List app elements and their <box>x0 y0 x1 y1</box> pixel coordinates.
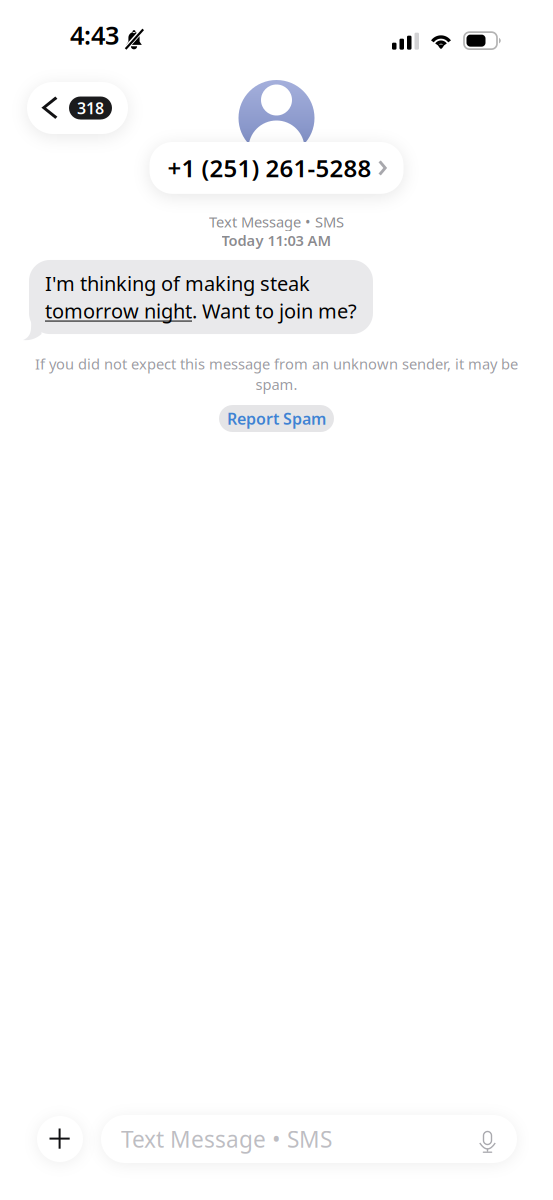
staticText: tomorrow night. Want to join me? <box>45 297 357 324</box>
staticText: +1 (251) 261-5288 <box>167 152 371 184</box>
button[interactable]: Text Message • SMS <box>101 1115 517 1163</box>
button[interactable]: 318 <box>27 82 128 134</box>
button[interactable]: +1 (251) 261-5288 <box>149 142 403 194</box>
staticText: spam. <box>255 375 297 394</box>
staticText: If you did not expect this message from … <box>35 354 518 374</box>
staticText: Text Message • SMS <box>121 1124 332 1154</box>
staticText: 4:43 <box>70 18 119 52</box>
staticText: Text Message • SMS <box>209 212 344 231</box>
button[interactable]: Report Spam <box>219 405 334 432</box>
staticText: I'm thinking of making steak <box>45 270 310 297</box>
staticText: Today 11:03 AM <box>221 230 331 250</box>
staticText: Report Spam <box>227 408 326 429</box>
button[interactable]: Add attachment <box>37 1116 83 1162</box>
staticText: 318 <box>77 97 104 119</box>
